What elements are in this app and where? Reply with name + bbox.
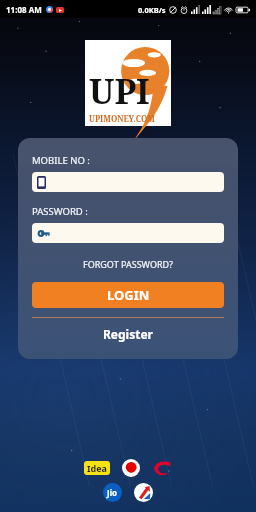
staticText: PASSWORD : [32,205,88,218]
staticText: Register [103,326,153,342]
other: UPI Money logo [85,40,171,126]
staticText: MOBILE NO : [32,154,90,167]
button[interactable]: FORGOT PASSWORD? [32,256,224,272]
staticText: LOGIN [107,286,150,304]
button[interactable]: LOGIN [32,282,224,308]
button[interactable]: Vodafone [122,459,140,477]
staticText: 11:08 AM [6,4,42,15]
button[interactable] [32,172,224,192]
staticText: FORGOT PASSWORD? [83,258,173,270]
button[interactable] [32,223,224,243]
staticText: UPIMONEY.COM [89,113,155,124]
staticText: Idea [87,462,107,474]
staticText: UPI [89,68,150,114]
button[interactable]: Airtel [152,460,172,476]
button[interactable]: Recharge [134,483,153,502]
button[interactable]: Register [32,325,224,343]
staticText: 0.0KB/s [138,5,166,15]
staticText: Jio [107,487,118,498]
button[interactable]: Idea [84,461,110,475]
button[interactable]: Jio [103,483,122,502]
